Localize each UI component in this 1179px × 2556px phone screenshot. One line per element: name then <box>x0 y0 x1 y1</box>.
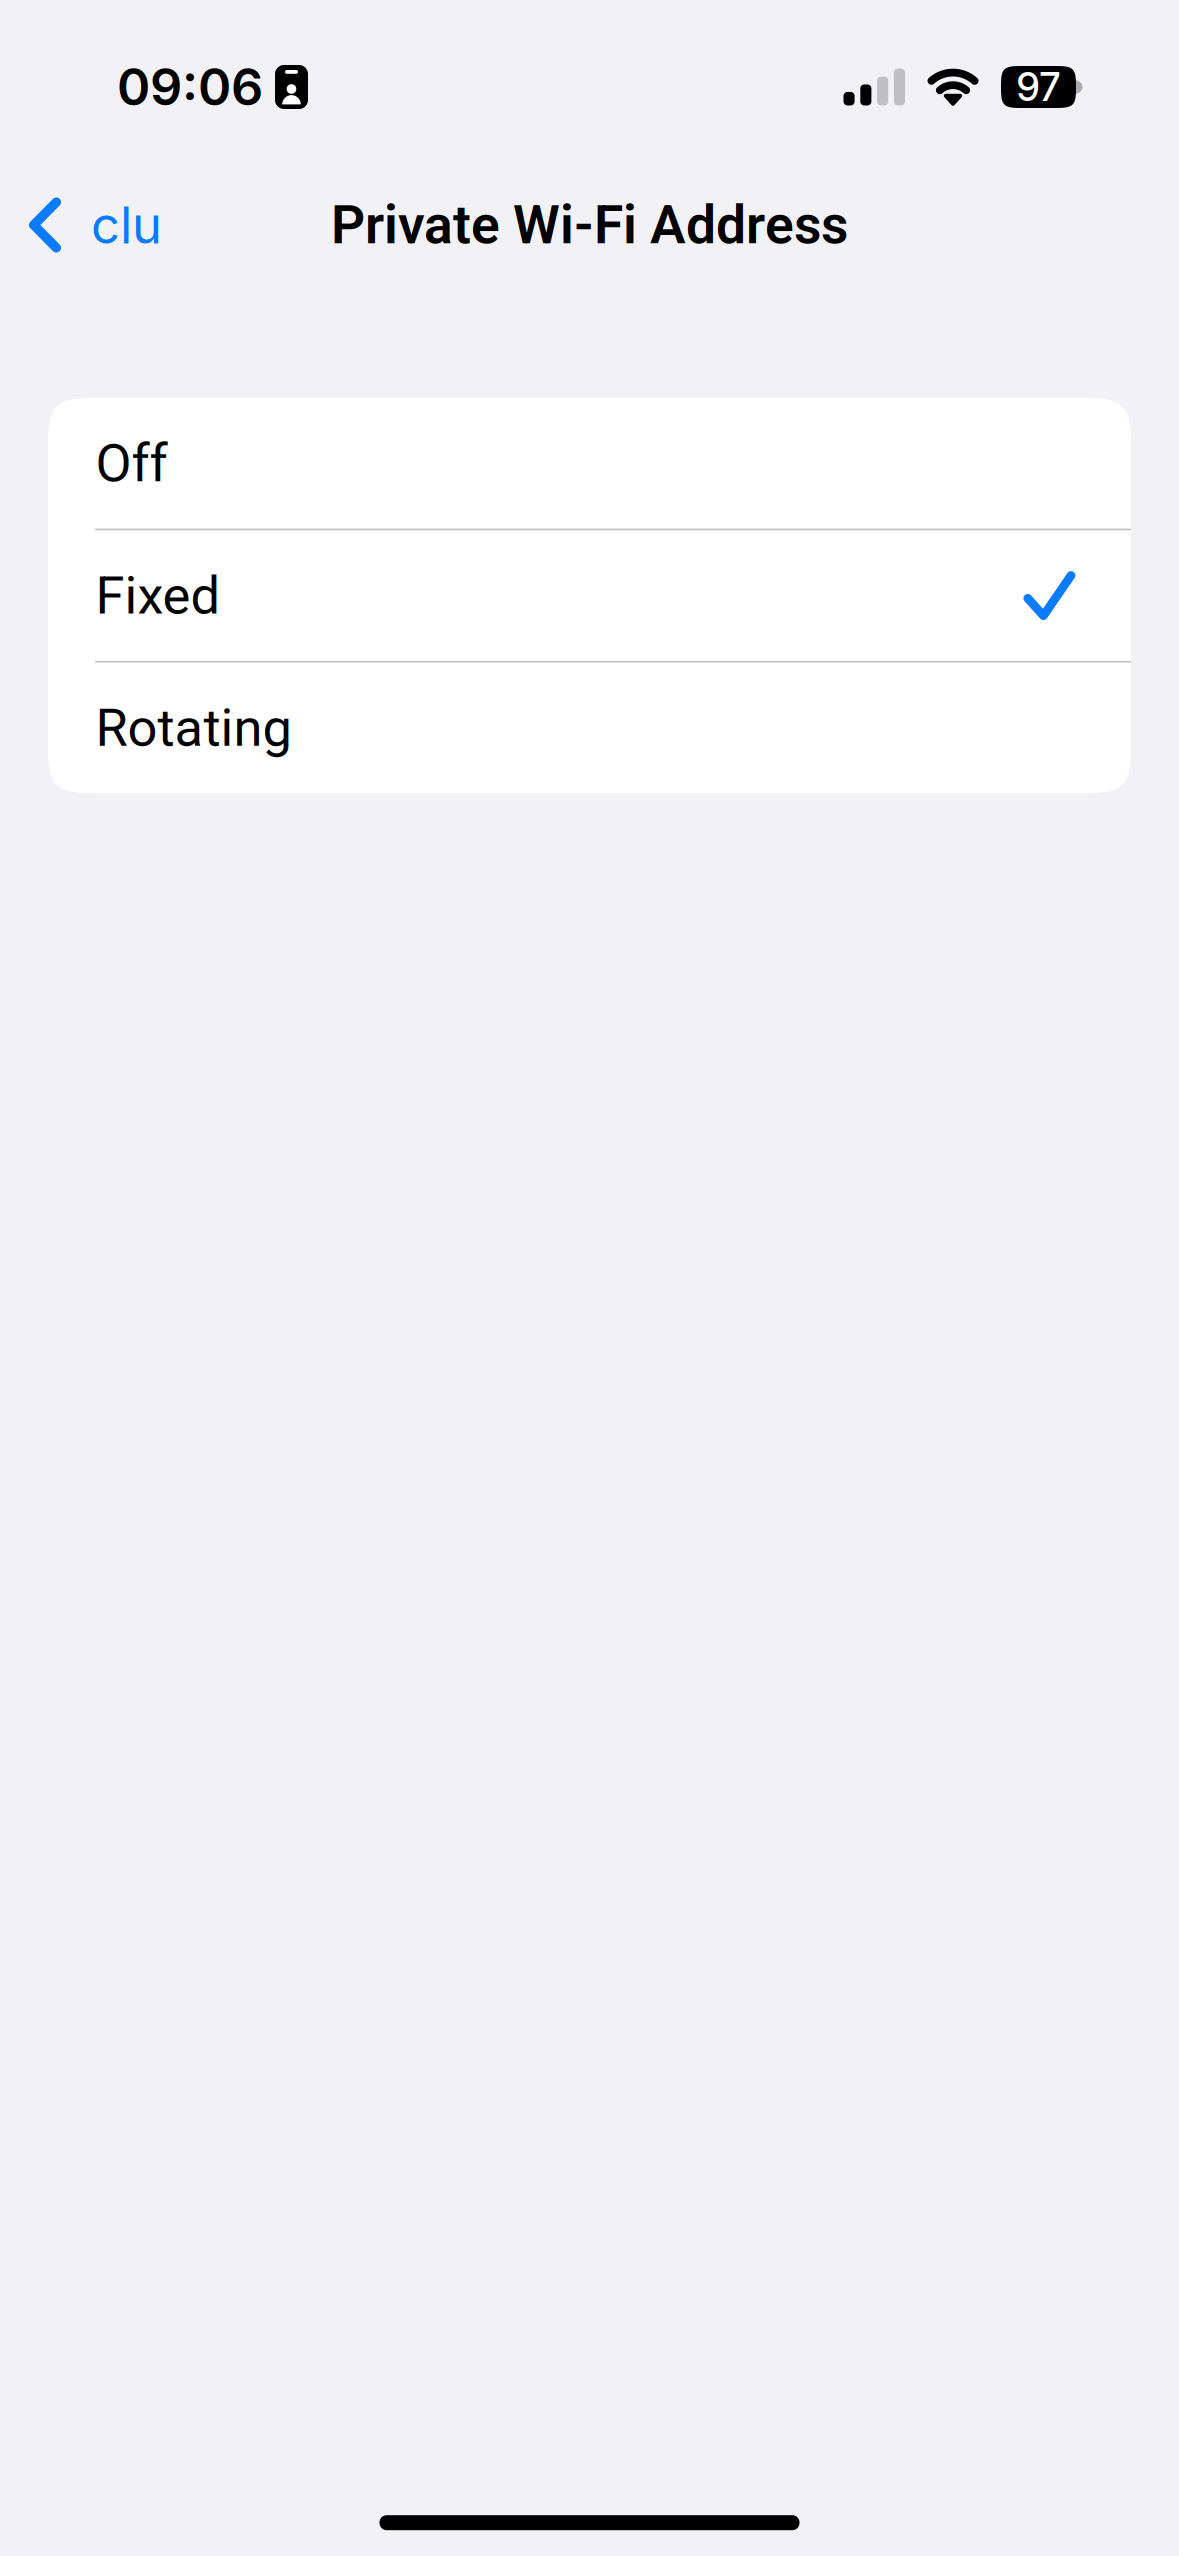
button[interactable]: Fixed <box>48 530 1131 661</box>
staticText: Private Wi-Fi Address <box>331 194 848 256</box>
staticText: clu <box>91 194 162 256</box>
staticText: Fixed <box>95 565 220 626</box>
staticText: Rotating <box>95 697 291 759</box>
button[interactable]: Back to clu <box>0 166 182 284</box>
button[interactable]: Rotating <box>48 663 1131 793</box>
button[interactable]: Off <box>48 398 1131 529</box>
staticText: 97 <box>1016 63 1060 110</box>
staticText: 09:06 <box>117 56 263 117</box>
staticText: Off <box>95 433 167 494</box>
